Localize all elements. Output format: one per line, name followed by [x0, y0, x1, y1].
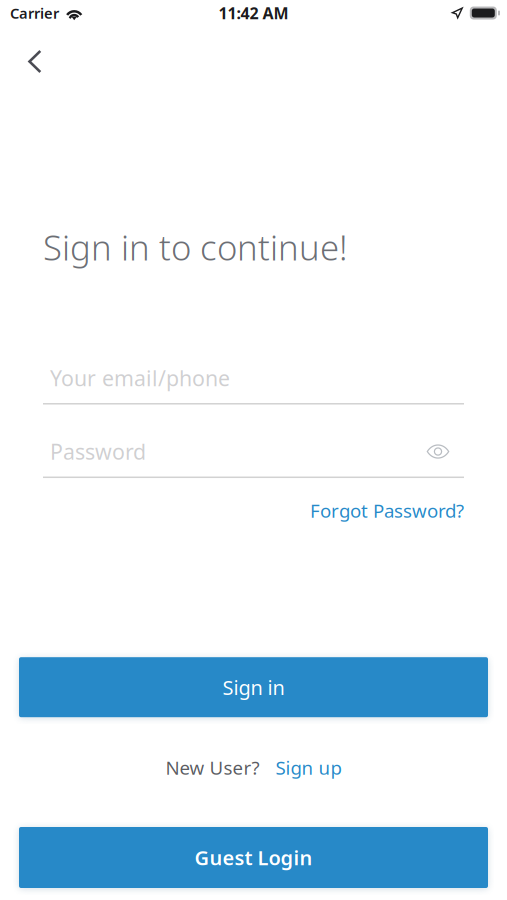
staticText: Sign in to continue!	[43, 224, 348, 270]
button[interactable]: Sign up	[275, 755, 341, 780]
staticText: Your email/phone	[50, 364, 230, 392]
button[interactable]: Forgot Password?	[310, 498, 464, 523]
button[interactable]: Back	[15, 39, 55, 83]
staticText: 11:42 AM	[218, 2, 288, 24]
staticText: Carrier	[10, 3, 59, 23]
button[interactable]: Guest Login	[19, 827, 488, 888]
staticText: Sign up	[275, 755, 341, 780]
staticText: Forgot Password?	[310, 498, 464, 523]
staticText: New User?	[165, 755, 259, 780]
staticText: Guest Login	[194, 844, 312, 871]
staticText: Sign in	[222, 674, 284, 700]
button[interactable]: Sign in	[19, 657, 488, 717]
button[interactable]: Show password	[421, 439, 464, 463]
staticText: Password	[50, 437, 146, 466]
